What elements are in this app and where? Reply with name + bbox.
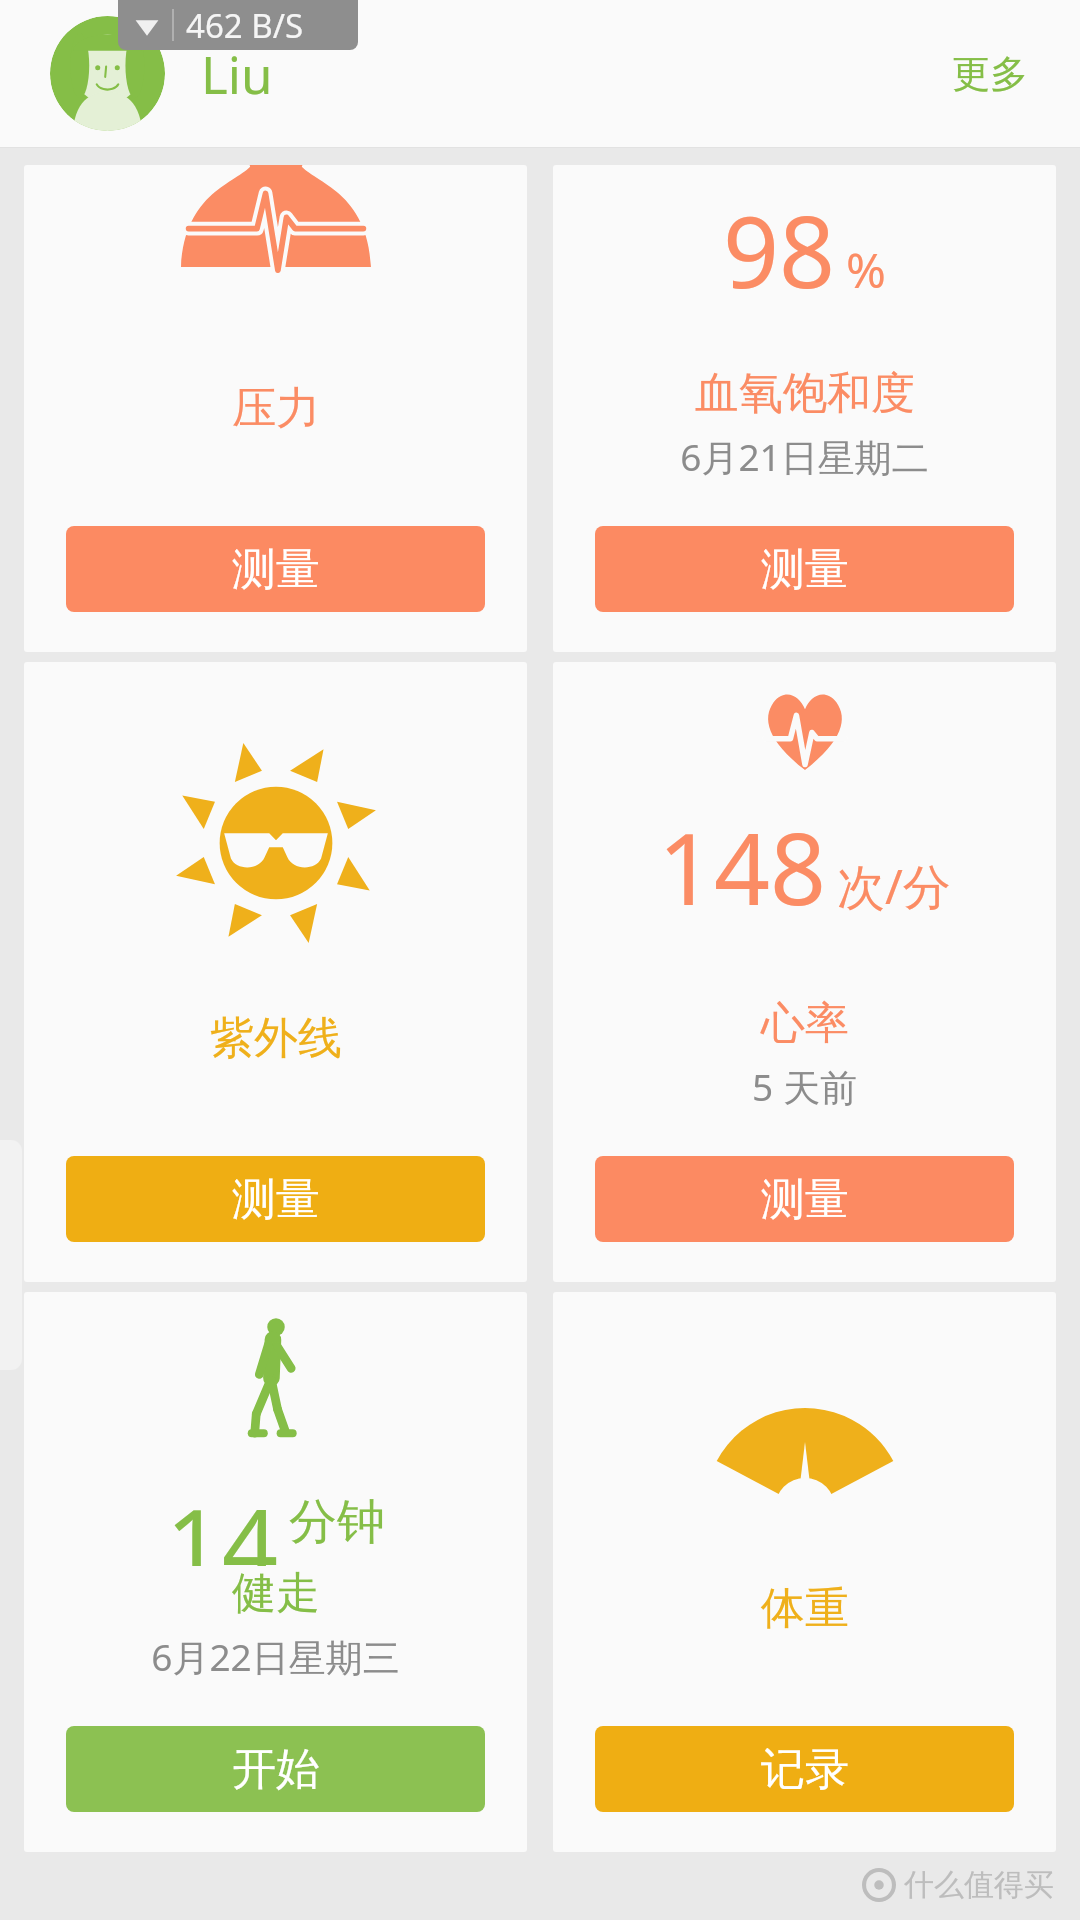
staticText: 6月22日星期三 — [151, 1631, 400, 1682]
staticText: 体重 — [761, 1581, 849, 1636]
button[interactable]: 测量 — [66, 526, 485, 612]
staticText: 紫外线 — [210, 1011, 342, 1066]
button[interactable]: 压力 — [24, 165, 527, 652]
button[interactable]: 测量 — [595, 1156, 1014, 1242]
staticText: % — [846, 237, 886, 302]
staticText: 测量 — [232, 1172, 320, 1227]
staticText: 测量 — [761, 542, 849, 597]
button[interactable]: 测量 — [66, 1156, 485, 1242]
button[interactable]: 14 — [24, 1292, 527, 1852]
staticText: 分钟 — [289, 1492, 385, 1552]
staticText: 开始 — [232, 1742, 320, 1797]
staticText: 6月21日星期二 — [680, 431, 929, 482]
staticText: 更多 — [952, 50, 1028, 98]
staticText: 148 — [658, 800, 827, 933]
button[interactable]: 体重 — [553, 1292, 1056, 1852]
staticText: 压力 — [232, 381, 320, 436]
staticText: 血氧饱和度 — [695, 366, 915, 421]
button[interactable]: 148 — [553, 662, 1056, 1282]
staticText: 次/分 — [837, 853, 951, 919]
staticText: 心率 — [761, 996, 849, 1051]
staticText: 什么值得买 — [904, 1866, 1054, 1904]
staticText: 测量 — [761, 1172, 849, 1227]
staticText: 记录 — [761, 1742, 849, 1797]
staticText: Liu — [201, 39, 273, 108]
button[interactable]: 98 — [553, 165, 1056, 652]
button[interactable]: 记录 — [595, 1726, 1014, 1812]
staticText: 14 — [166, 1476, 279, 1566]
button[interactable]: Profile avatar — [50, 16, 165, 131]
staticText: 5 天前 — [752, 1061, 857, 1112]
staticText: 462 B/S — [186, 3, 304, 48]
button[interactable]: 更多 — [944, 42, 1036, 106]
staticText: 98 — [723, 183, 836, 316]
button[interactable]: 测量 — [595, 526, 1014, 612]
button[interactable]: 开始 — [66, 1726, 485, 1812]
staticText: 健走 — [232, 1566, 320, 1621]
staticText: 测量 — [232, 542, 320, 597]
button[interactable]: 紫外线 — [24, 662, 527, 1282]
